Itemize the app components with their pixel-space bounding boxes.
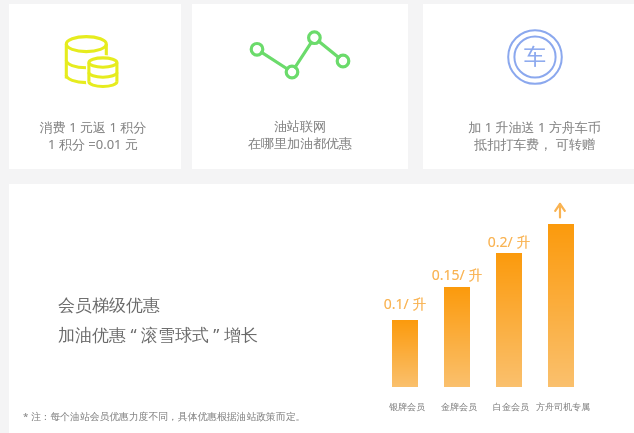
- button[interactable]: 油站联网: [192, 4, 408, 169]
- staticText: 车: [524, 43, 546, 71]
- staticText: 银牌会员: [367, 401, 447, 412]
- staticText: 0.1/ 升: [365, 294, 445, 313]
- staticText: 0.15/ 升: [417, 265, 497, 284]
- staticText: 金牌会员: [419, 401, 499, 412]
- staticText: 加油优惠 “ 滚雪球式 ” 增长: [58, 323, 258, 346]
- staticText: * 注：每个油站会员优惠力度不同，具体优惠根据油站政策而定。: [23, 410, 306, 423]
- staticText: 白金会员: [471, 401, 551, 412]
- staticText: 油站联网: [192, 118, 408, 134]
- staticText: 方舟司机专属: [523, 401, 603, 412]
- staticText: 在哪里加油都优惠: [192, 135, 408, 151]
- staticText: 抵扣打车费， 可转赠: [423, 135, 634, 153]
- staticText: 1 积分 =0.01 元: [7, 135, 179, 153]
- staticText: 消费 1 元返 1 积分: [7, 118, 179, 136]
- staticText: 加 1 升油送 1 方舟车币: [423, 118, 634, 136]
- staticText: 会员梯级优惠: [58, 295, 160, 316]
- button[interactable]: 消费 1 元返 1 积分: [9, 4, 181, 169]
- button[interactable]: 车: [423, 4, 634, 169]
- staticText: 0.2/ 升: [469, 232, 549, 251]
